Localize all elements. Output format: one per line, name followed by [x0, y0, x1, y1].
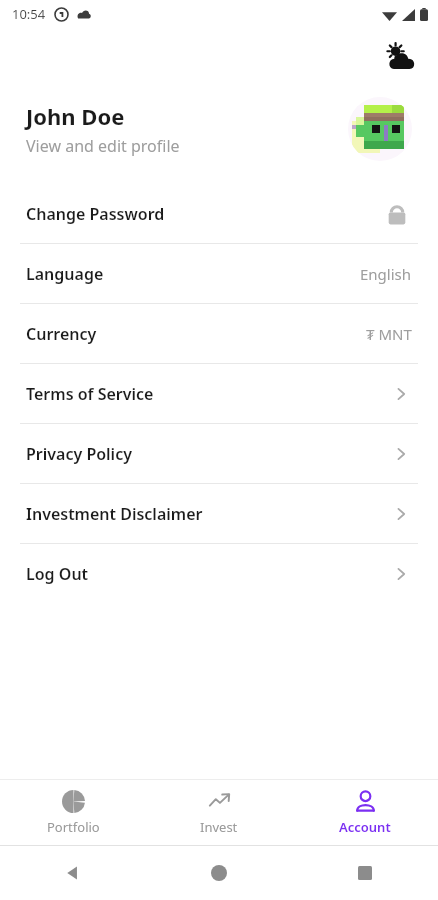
- button[interactable]: Currency: [0, 304, 438, 363]
- staticText: 10:54: [12, 5, 46, 23]
- staticText: Language: [26, 263, 104, 285]
- staticText: Portfolio: [47, 818, 100, 836]
- other: Open: [390, 503, 412, 525]
- staticText: Change Password: [26, 203, 165, 225]
- staticText: Terms of Service: [26, 383, 154, 405]
- button[interactable]: Back: [53, 853, 93, 893]
- staticText: English: [360, 264, 412, 284]
- staticText: Privacy Policy: [26, 443, 132, 465]
- other: Open: [390, 563, 412, 585]
- staticText: View and edit profile: [26, 135, 180, 157]
- button[interactable]: Change Password: [0, 184, 438, 243]
- staticText: Account: [339, 818, 391, 836]
- button[interactable]: Home: [199, 853, 239, 893]
- button[interactable]: Invest: [146, 780, 292, 845]
- button[interactable]: Account: [292, 780, 438, 845]
- button[interactable]: Terms of Service: [0, 364, 438, 423]
- staticText: Investment Disclaimer: [26, 503, 203, 525]
- button[interactable]: John Doe: [0, 84, 438, 174]
- button[interactable]: Language: [0, 244, 438, 303]
- other: Open: [390, 383, 412, 405]
- staticText: ₮ MNT: [366, 324, 412, 344]
- button[interactable]: Portfolio: [0, 780, 146, 845]
- other: Locked: [382, 199, 412, 229]
- staticText: Invest: [200, 818, 238, 836]
- staticText: John Doe: [26, 101, 125, 131]
- button[interactable]: Privacy Policy: [0, 424, 438, 483]
- button[interactable]: Investment Disclaimer: [0, 484, 438, 543]
- staticText: Log Out: [26, 563, 89, 585]
- other: Open: [390, 443, 412, 465]
- button[interactable]: Weather: [378, 34, 422, 78]
- staticText: Currency: [26, 323, 97, 345]
- button[interactable]: Recent apps: [345, 853, 385, 893]
- button[interactable]: Log Out: [0, 544, 438, 603]
